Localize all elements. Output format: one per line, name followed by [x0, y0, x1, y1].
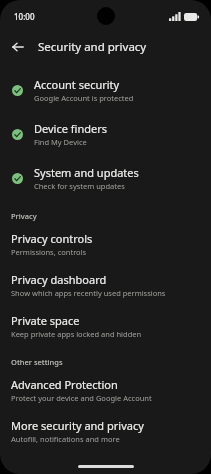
staticText: Advanced Protection — [11, 377, 118, 392]
button[interactable]: Privacy controls — [0, 229, 211, 259]
staticText: Google Account is protected — [34, 93, 134, 103]
staticText: Check for system updates — [34, 181, 125, 191]
button[interactable]: Account security — [0, 73, 211, 107]
staticText: System and updates — [34, 165, 139, 180]
button[interactable]: Device finders — [0, 117, 211, 151]
staticText: Protect your device and Google Account — [11, 393, 152, 403]
button[interactable]: Private space — [0, 311, 211, 341]
staticText: Privacy — [11, 211, 37, 221]
staticText: Show which apps recently used permission… — [11, 288, 166, 298]
staticText: Find My Device — [34, 137, 87, 147]
staticText: 10:00 — [14, 11, 35, 22]
staticText: Autofill, notifications and more — [11, 434, 120, 444]
button[interactable]: More security and privacy — [0, 416, 211, 446]
staticText: Account security — [34, 77, 120, 92]
staticText: Device finders — [34, 121, 107, 136]
button[interactable]: System and updates — [0, 161, 211, 195]
staticText: Keep private apps locked and hidden — [11, 329, 142, 339]
staticText: Privacy dashboard — [11, 272, 107, 287]
staticText: Permissions, controls — [11, 247, 87, 257]
staticText: Private space — [11, 313, 80, 328]
staticText: Privacy controls — [11, 231, 93, 246]
staticText: Other settings — [11, 357, 63, 367]
staticText: Security and privacy — [38, 39, 147, 55]
staticText: More security and privacy — [11, 418, 144, 433]
button[interactable]: Privacy dashboard — [0, 270, 211, 300]
button[interactable]: Back — [7, 36, 29, 58]
button[interactable]: Advanced Protection — [0, 375, 211, 405]
